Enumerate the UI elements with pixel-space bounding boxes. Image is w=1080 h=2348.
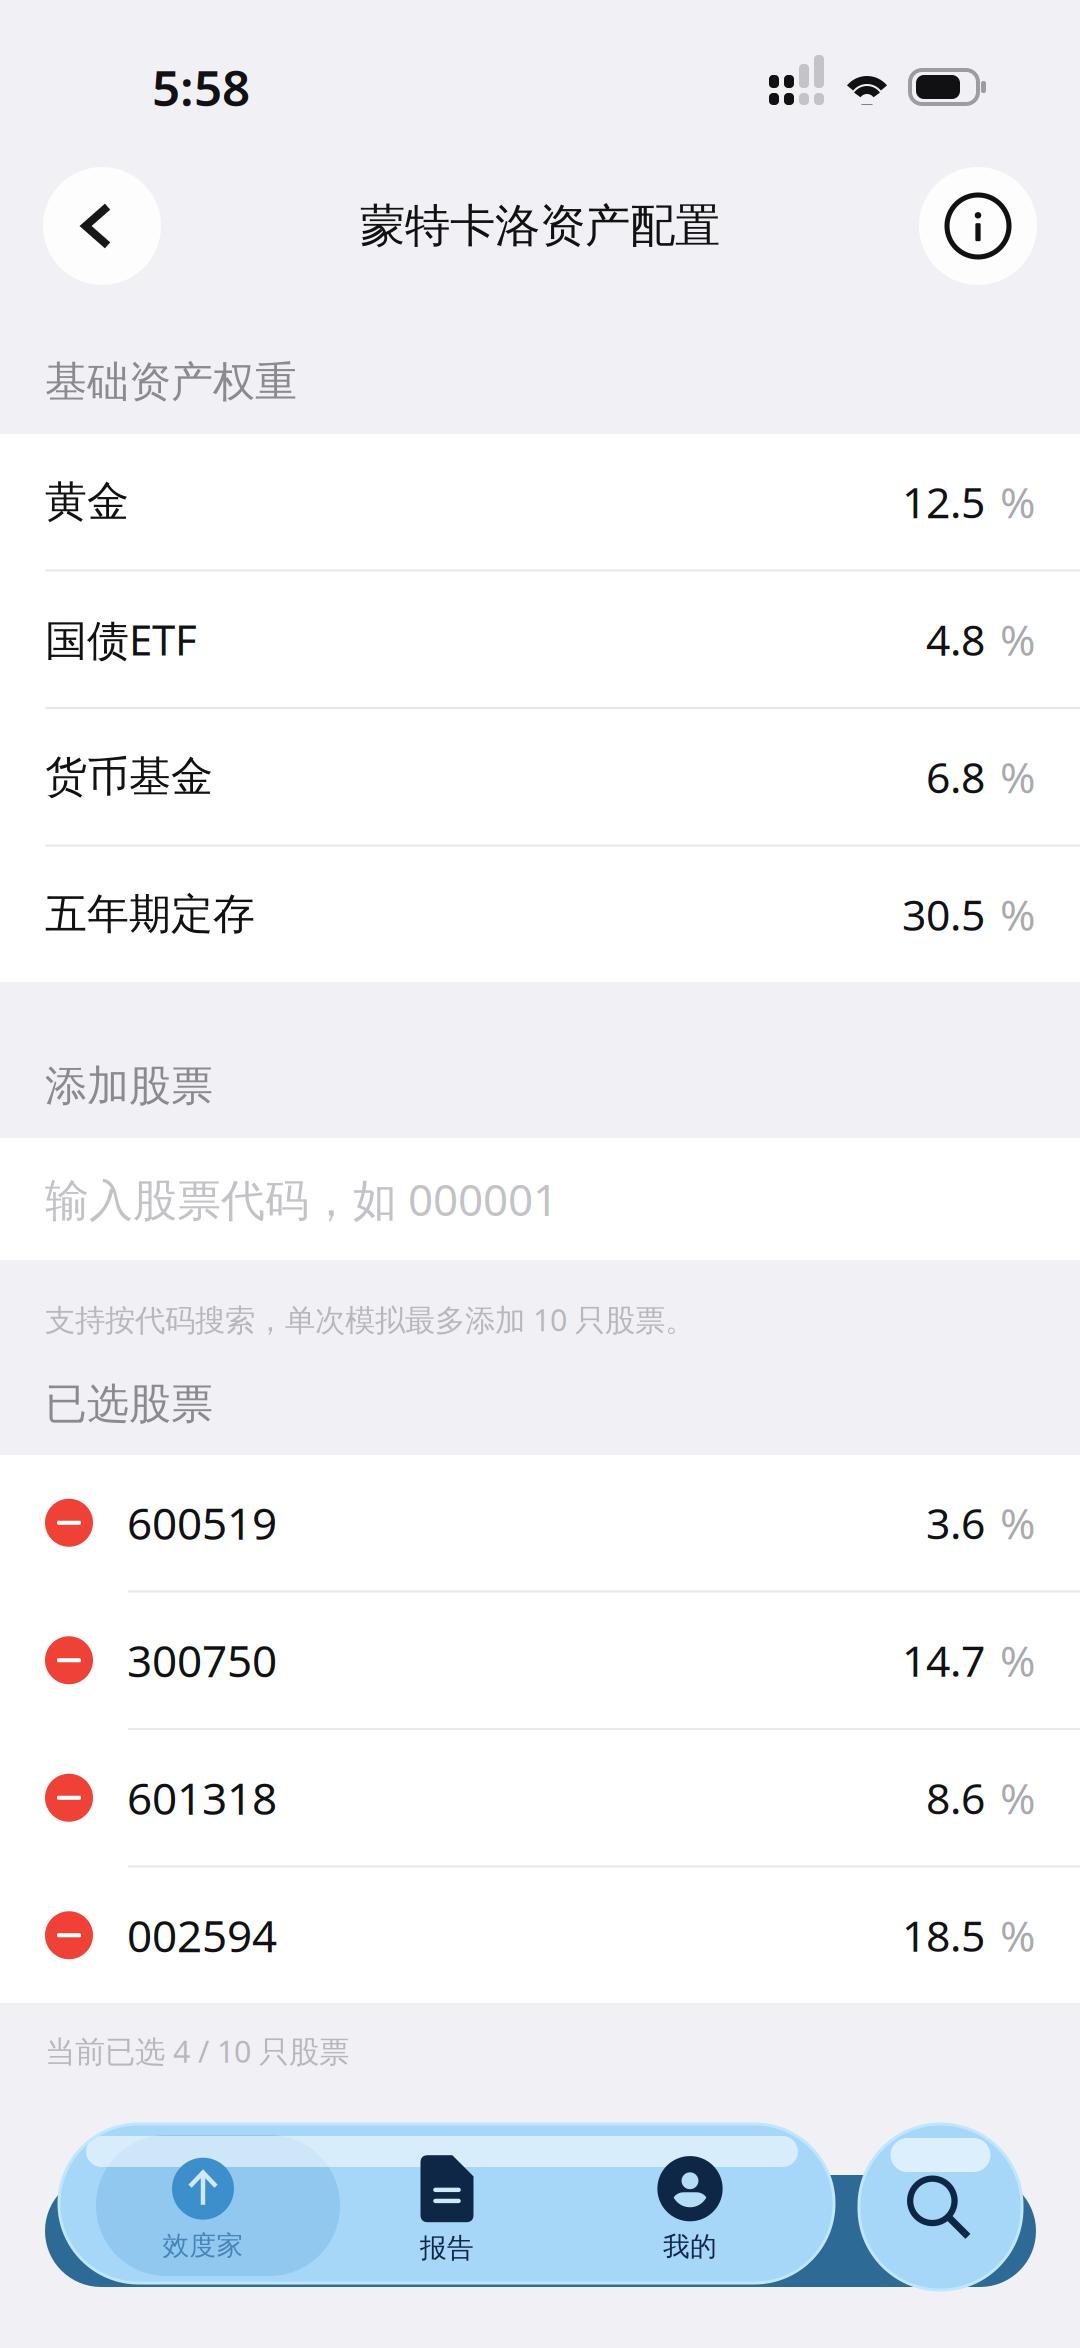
button[interactable]: Back xyxy=(43,167,161,285)
staticText: 18.5 xyxy=(902,1906,985,1964)
staticText: 3.6 xyxy=(926,1494,985,1552)
staticText: 添加股票 xyxy=(45,1059,213,1112)
staticText: 5:58 xyxy=(152,53,250,121)
staticText: 蒙特卡洛资产配置 xyxy=(360,197,720,254)
staticText: % xyxy=(1000,1631,1035,1689)
staticText: 五年期定存 xyxy=(45,888,255,941)
staticText: % xyxy=(1000,748,1035,806)
staticText: 报告 xyxy=(420,2231,474,2265)
staticText: 基础资产权重 xyxy=(45,355,297,408)
staticText: % xyxy=(1000,1494,1035,1552)
staticText: % xyxy=(1000,473,1035,531)
staticText: 600519 xyxy=(127,1493,277,1553)
button[interactable]: Info xyxy=(919,167,1037,285)
staticText: 002594 xyxy=(127,1905,277,1965)
staticText: 6.8 xyxy=(926,748,985,806)
staticText: 4.8 xyxy=(926,610,985,668)
staticText: 8.6 xyxy=(926,1769,985,1827)
staticText: 黄金 xyxy=(45,475,129,528)
staticText: 输入股票代码，如 000001 xyxy=(45,1169,558,1229)
button[interactable]: 效度家 xyxy=(59,2124,303,2269)
staticText: 货币基金 xyxy=(45,750,213,803)
staticText: 已选股票 xyxy=(45,1377,213,1430)
staticText: % xyxy=(1000,610,1035,668)
staticText: % xyxy=(1000,1769,1035,1827)
staticText: 我的 xyxy=(663,2230,717,2263)
staticText: % xyxy=(1000,1906,1035,1964)
staticText: 当前已选 4 / 10 只股票 xyxy=(45,2030,349,2072)
staticText: 14.7 xyxy=(902,1631,985,1689)
button[interactable]: Search xyxy=(859,2124,1022,2290)
staticText: 601318 xyxy=(127,1768,277,1828)
staticText: 300750 xyxy=(127,1630,277,1690)
button[interactable]: 我的 xyxy=(59,2124,790,2269)
button[interactable]: 报告 xyxy=(59,2124,547,2269)
staticText: 30.5 xyxy=(902,885,985,943)
staticText: 国债ETF xyxy=(45,611,197,668)
staticText: 12.5 xyxy=(902,473,985,531)
staticText: 效度家 xyxy=(162,2229,243,2262)
staticText: 支持按代码搜索，单次模拟最多添加 10 只股票。 xyxy=(45,1299,695,1340)
staticText: % xyxy=(1000,885,1035,943)
